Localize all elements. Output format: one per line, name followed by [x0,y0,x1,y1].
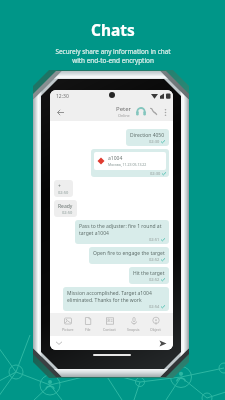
staticText: Москва, 11.23 05.13.22 [108,162,147,167]
button[interactable]: Send [157,337,169,349]
staticText: 02:50 [58,190,69,195]
staticText: 12:30 [56,93,69,100]
button[interactable]: Call [147,105,160,118]
staticText: Chats [91,19,135,40]
button[interactable]: Ready [54,200,77,217]
button[interactable]: Mission accomplished. Target a1004 elimi… [63,287,169,311]
staticText: Hit the target [133,270,165,277]
button[interactable]: Contact [102,317,117,332]
button[interactable]: Headset call [134,105,147,118]
staticText: + [58,183,61,190]
staticText: 02:54 [149,304,160,309]
staticText: Pass to the adjuster: fire 1 round at ta… [79,223,165,237]
button[interactable]: Hit the target [129,267,169,284]
staticText: Peter [116,105,132,113]
button[interactable]: More options [160,107,170,117]
button[interactable]: Snapsis [126,317,141,332]
staticText: Snapsis [127,327,140,332]
button[interactable]: Back [54,106,66,118]
staticText: a1004 [108,155,123,162]
staticText: Online [118,113,130,118]
button[interactable]: Open fire to engage the target [89,247,169,264]
button[interactable]: Direction 4050 [126,129,169,146]
staticText: 02:30 [149,139,160,144]
staticText: Direction 4050 [130,132,165,139]
button[interactable]: File [83,317,93,332]
staticText: 02:50 [62,210,73,215]
staticText: Object [150,327,161,332]
staticText: 02:52 [149,257,160,262]
staticText: Picture [62,327,74,332]
button[interactable]: Object [149,317,162,332]
staticText: Mission accomplished. Target a1004 elimi… [67,290,165,304]
staticText: 02:51 [149,237,160,242]
button[interactable]: a1004 [91,149,169,177]
button[interactable]: + [54,180,73,197]
staticText: Securely share any information in chat w… [55,47,171,65]
staticText: 02:52 [149,277,160,282]
staticText: 02:30 [150,171,161,176]
button[interactable]: Picture [61,317,75,332]
staticText: Open fire to engage the target [93,250,165,257]
staticText: Ready [58,203,73,210]
button[interactable]: Pass to the adjuster: fire 1 round at ta… [75,220,169,244]
button[interactable]: Expand [54,338,64,348]
staticText: File [85,327,91,332]
staticText: Contact [103,327,116,332]
